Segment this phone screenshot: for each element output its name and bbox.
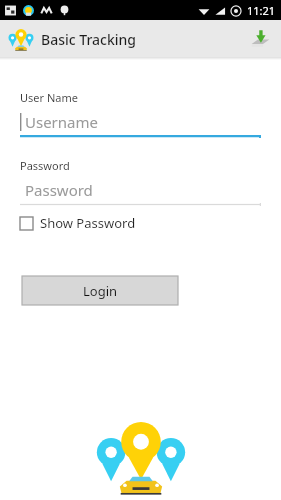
staticText: User Name <box>20 90 78 105</box>
staticText: Username <box>25 112 98 132</box>
button[interactable]: Login <box>22 276 178 305</box>
staticText: Show Password <box>40 214 136 232</box>
button[interactable]: Username <box>20 109 261 138</box>
button[interactable]: Import <box>245 24 275 54</box>
staticText: Password <box>25 180 93 200</box>
staticText: 11:21 <box>247 3 276 18</box>
staticText: Password <box>20 158 70 173</box>
button[interactable]: Password <box>20 177 261 206</box>
staticText: Basic Tracking <box>41 30 137 49</box>
staticText: Login <box>83 282 118 300</box>
button[interactable]: Show Password <box>20 214 136 232</box>
